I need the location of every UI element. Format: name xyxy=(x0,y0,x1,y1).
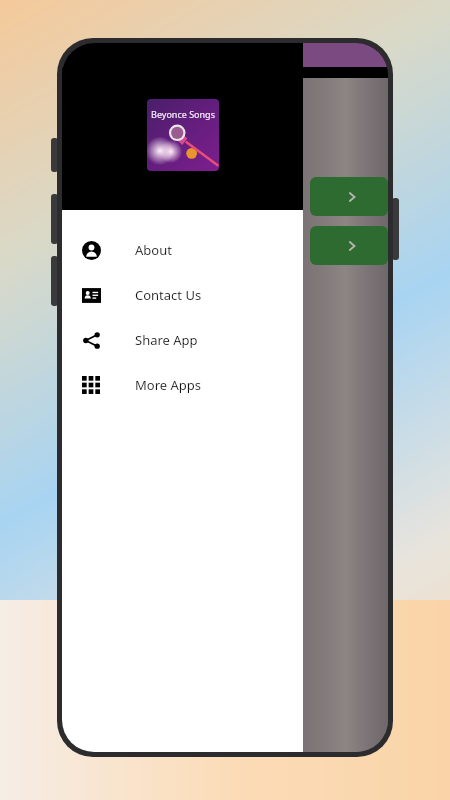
button[interactable] xyxy=(310,226,388,265)
button[interactable]: Contact Us xyxy=(62,272,303,317)
staticText: More Apps xyxy=(135,376,202,394)
staticText: Contact Us xyxy=(135,286,202,304)
button[interactable]: Beyonce Songs xyxy=(147,99,219,171)
staticText: Share App xyxy=(135,331,198,349)
staticText: م ١١:٠٧ %٦٩ xyxy=(70,49,131,61)
button[interactable]: Share App xyxy=(62,317,303,362)
button[interactable]: About xyxy=(62,227,303,272)
other: More Apps xyxy=(82,376,100,394)
other: About xyxy=(82,241,101,260)
button[interactable] xyxy=(310,177,388,216)
button[interactable]: More Apps xyxy=(62,362,303,407)
other: Contact Us xyxy=(82,286,101,305)
other: Share App xyxy=(82,331,101,350)
staticText: About xyxy=(135,241,172,259)
staticText: Beyonce Songs xyxy=(151,108,215,120)
